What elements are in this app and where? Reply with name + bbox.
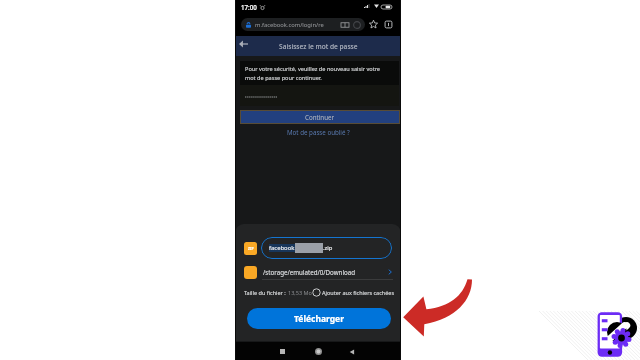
button[interactable]: Back bbox=[236, 37, 250, 51]
staticText: Taille du fichier : bbox=[244, 289, 288, 296]
button[interactable]: Reload bbox=[353, 21, 361, 29]
staticText: Saisissez le mot de passe bbox=[279, 42, 358, 51]
button[interactable]: Home bbox=[312, 345, 325, 358]
button[interactable]: m.facebook.com/login/re bbox=[241, 18, 365, 31]
button[interactable]: Bookmark bbox=[369, 20, 378, 29]
staticText: 13,53 Mo bbox=[288, 289, 312, 296]
button[interactable]: Reader mode bbox=[341, 21, 349, 29]
staticText: Ajouter aux fichiers cachées bbox=[322, 289, 395, 296]
button[interactable]: Mot de passe oublié ? bbox=[285, 126, 352, 138]
staticText: /storage/emulated/0/Download bbox=[263, 268, 356, 276]
button[interactable]: facebook bbox=[261, 237, 392, 259]
staticText: .zip bbox=[323, 244, 333, 252]
button[interactable]: Ajouter aux fichiers cachées bbox=[312, 288, 321, 297]
staticText: 17:00 bbox=[241, 3, 257, 11]
button[interactable]: Télécharger bbox=[247, 308, 391, 329]
staticText: Pour votre sécurité, veuillez de nouveau… bbox=[245, 65, 392, 81]
staticText: Continuer bbox=[305, 113, 335, 121]
button[interactable]: Back bbox=[345, 345, 358, 358]
staticText: ZIP bbox=[248, 246, 254, 251]
button[interactable] bbox=[240, 85, 399, 106]
staticText: m.facebook.com/login/re bbox=[255, 21, 324, 29]
button[interactable]: Recent apps bbox=[276, 345, 289, 358]
button[interactable]: App logo bbox=[591, 311, 640, 360]
button[interactable]: Tabs bbox=[384, 20, 393, 29]
button[interactable]: Continuer bbox=[241, 111, 399, 123]
staticText: facebook bbox=[269, 244, 295, 252]
staticText: Télécharger bbox=[294, 313, 344, 325]
button[interactable]: /storage/emulated/0/Download bbox=[244, 265, 393, 279]
